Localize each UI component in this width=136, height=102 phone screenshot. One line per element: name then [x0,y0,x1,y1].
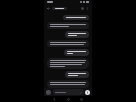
button[interactable] [65,31,89,38]
button[interactable] [47,40,89,47]
button[interactable]: Voice input [85,90,90,95]
button[interactable] [47,58,89,69]
button[interactable]: Attach [53,89,84,95]
button[interactable]: New chat [80,6,85,11]
button[interactable] [65,71,89,78]
button[interactable]: Attach [79,91,82,94]
button[interactable] [64,49,89,56]
button[interactable]: Back [46,6,51,11]
button[interactable]: Recent apps [79,97,84,102]
button[interactable]: Home [66,97,71,102]
button[interactable] [63,15,89,20]
button[interactable] [47,80,89,88]
button[interactable]: More options [85,6,90,11]
button[interactable] [47,22,89,29]
button[interactable]: Profile [46,90,51,95]
button[interactable]: Back [52,97,57,102]
button[interactable] [52,7,67,10]
